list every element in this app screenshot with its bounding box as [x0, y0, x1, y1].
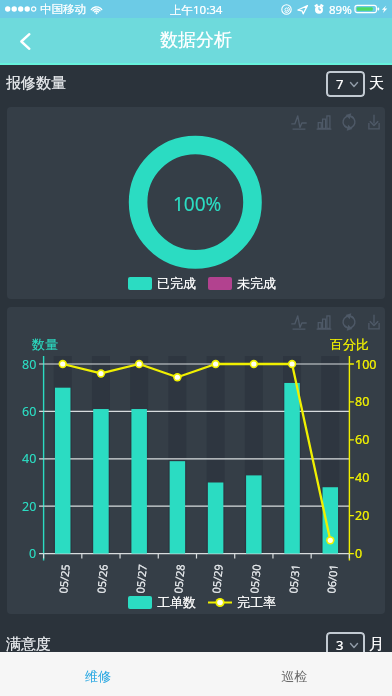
staticText: 3: [336, 636, 344, 654]
staticText: 05/28: [170, 563, 188, 594]
button[interactable]: Refresh: [341, 114, 357, 130]
staticText: 20: [22, 498, 37, 515]
staticText: 80: [355, 393, 370, 410]
staticText: 0: [355, 545, 363, 562]
button[interactable]: 维修: [0, 652, 196, 696]
staticText: 06/01: [323, 563, 341, 594]
button[interactable]: Bar chart: [316, 314, 332, 330]
staticText: 完工率: [237, 594, 276, 610]
button[interactable]: Back: [8, 24, 42, 58]
staticText: 0: [29, 545, 37, 562]
staticText: 7: [336, 75, 344, 93]
staticText: 报修数量: [6, 74, 66, 93]
staticText: 89%: [329, 2, 352, 18]
staticText: 数据分析: [160, 29, 232, 52]
staticText: 40: [22, 450, 37, 467]
staticText: 05/31: [285, 563, 303, 594]
staticText: 百分比: [330, 336, 369, 352]
staticText: 05/26: [93, 563, 111, 594]
staticText: 未完成: [237, 275, 276, 291]
staticText: 05/27: [132, 563, 150, 594]
staticText: 100: [355, 356, 377, 373]
staticText: 中国移动: [40, 2, 86, 16]
staticText: 60: [22, 403, 37, 420]
button[interactable]: Download: [366, 114, 382, 130]
staticText: 数量: [32, 336, 58, 352]
button[interactable]: 3: [326, 632, 365, 658]
staticText: 05/30: [246, 563, 264, 594]
staticText: 05/29: [208, 563, 226, 594]
staticText: 60: [355, 431, 370, 448]
button[interactable]: Line chart: [291, 314, 307, 330]
staticText: 20: [355, 507, 370, 524]
button[interactable]: 7: [326, 71, 365, 97]
staticText: 已完成: [157, 275, 196, 291]
staticText: 上午10:34: [170, 2, 223, 18]
staticText: 80: [22, 356, 37, 373]
staticText: 维修: [85, 668, 111, 684]
staticText: 天: [369, 74, 384, 93]
staticText: 满意度: [6, 635, 51, 654]
button[interactable]: Line chart: [291, 114, 307, 130]
staticText: 月: [369, 635, 384, 654]
staticText: 100%: [173, 191, 222, 217]
staticText: 工单数: [157, 594, 196, 610]
button[interactable]: Download: [366, 314, 382, 330]
button[interactable]: 巡检: [196, 652, 392, 696]
button[interactable]: Refresh: [341, 314, 357, 330]
staticText: 巡检: [281, 668, 307, 684]
button[interactable]: Bar chart: [316, 114, 332, 130]
staticText: 40: [355, 469, 370, 486]
staticText: 05/25: [55, 563, 73, 594]
